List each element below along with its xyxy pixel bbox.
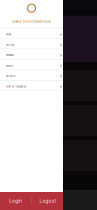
staticText: Logout: [39, 198, 55, 204]
staticText: Earrings: [6, 44, 14, 46]
button[interactable]: Rings: [0, 28, 63, 39]
button[interactable]: View all categories: [0, 81, 63, 91]
button[interactable]: Solitaire: [0, 70, 63, 81]
button[interactable]: Login: [0, 192, 31, 210]
staticText: Bangles: [6, 64, 13, 67]
staticText: Solitaire: [6, 75, 15, 77]
staticText: SHREE NATH DIAMONDS: [12, 20, 51, 24]
staticText: Rings: [6, 33, 11, 36]
button[interactable]: Bangles: [0, 60, 63, 70]
button[interactable]: Earrings: [0, 39, 63, 49]
staticText: Login: [9, 198, 22, 204]
button[interactable]: Logout: [32, 192, 63, 210]
button[interactable]: Pendants: [0, 49, 63, 60]
staticText: View all categories: [6, 85, 26, 88]
staticText: Pendants: [6, 54, 14, 57]
